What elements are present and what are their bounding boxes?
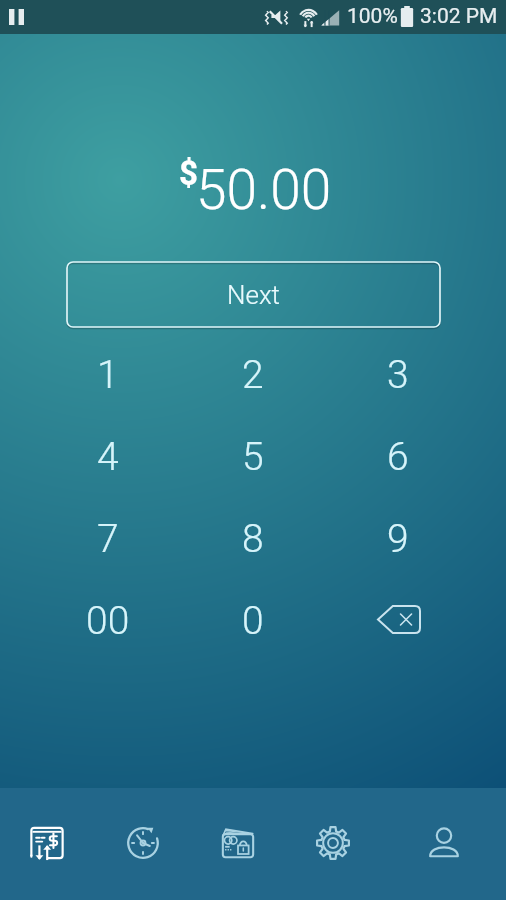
button[interactable]: 2 (180, 334, 325, 416)
staticText: 7 (97, 516, 119, 562)
staticText: 4 (97, 434, 119, 480)
button[interactable]: 7 (36, 498, 180, 580)
button[interactable]: 00 (36, 580, 180, 662)
button[interactable]: 4 (36, 416, 180, 498)
button[interactable]: Next (66, 261, 441, 328)
button[interactable]: 6 (325, 416, 470, 498)
other: Backspace (377, 605, 421, 634)
button[interactable]: Transfers (11, 807, 83, 879)
staticText: 00 (86, 598, 130, 644)
staticText: 100% (347, 4, 398, 29)
button[interactable]: 9 (325, 498, 470, 580)
button[interactable]: Settings (297, 807, 369, 879)
button[interactable]: 5 (180, 416, 325, 498)
staticText: $ (179, 153, 198, 192)
staticText: 2 (242, 352, 264, 398)
staticText: 5 (242, 434, 264, 480)
button[interactable]: 1 (36, 334, 180, 416)
other: Media paused (9, 9, 24, 25)
staticText: Next (227, 280, 280, 310)
staticText: 3:02 PM (420, 4, 498, 29)
staticText: 3 (387, 352, 409, 398)
staticText: 0 (242, 598, 264, 644)
staticText: 1 (97, 352, 119, 398)
button[interactable]: 0 (180, 580, 325, 662)
button[interactable]: 3 (325, 334, 470, 416)
button[interactable]: Backspace (325, 580, 470, 662)
button[interactable]: 8 (180, 498, 325, 580)
staticText: 8 (242, 516, 264, 562)
staticText: 9 (387, 516, 409, 562)
button[interactable]: History (107, 807, 179, 879)
button[interactable]: Cards (202, 807, 274, 879)
staticText: 6 (387, 434, 409, 480)
staticText: 50.00 (196, 158, 332, 222)
button[interactable]: Profile (408, 807, 480, 879)
